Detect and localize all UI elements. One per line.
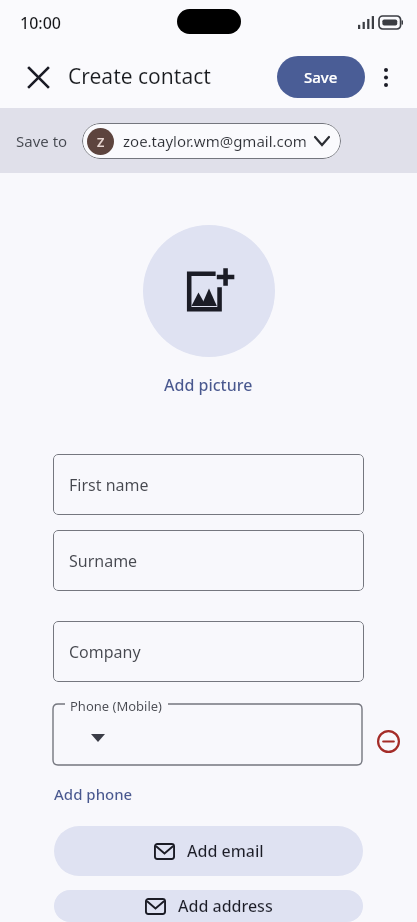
- button[interactable]: Add phone: [54, 784, 133, 804]
- button[interactable]: Remove phone: [367, 720, 409, 762]
- button[interactable]: Add address: [54, 890, 363, 922]
- staticText: 10:00: [20, 12, 61, 34]
- button[interactable]: Z: [82, 123, 341, 159]
- staticText: Create contact: [68, 62, 211, 91]
- button[interactable]: Company: [53, 621, 364, 682]
- staticText: First name: [69, 474, 149, 496]
- button[interactable]: Add email: [54, 826, 363, 876]
- button[interactable]: More options: [365, 56, 407, 98]
- staticText: Surname: [69, 550, 138, 572]
- button[interactable]: First name: [53, 454, 364, 515]
- staticText: Phone (Mobile): [70, 697, 163, 715]
- staticText: Save to: [16, 131, 68, 151]
- button[interactable]: Save: [277, 56, 365, 98]
- button[interactable]: Add picture: [143, 225, 275, 357]
- button[interactable]: Phone (Mobile): [53, 704, 362, 765]
- button[interactable]: Surname: [53, 530, 364, 591]
- staticText: zoe.taylor.wm@gmail.com: [123, 131, 307, 151]
- staticText: Add email: [187, 840, 264, 862]
- button[interactable]: Close: [16, 55, 60, 99]
- staticText: Add address: [178, 895, 273, 917]
- staticText: Save: [304, 67, 338, 87]
- button[interactable]: Add picture: [164, 374, 253, 396]
- staticText: Z: [97, 133, 105, 151]
- staticText: Company: [69, 641, 141, 663]
